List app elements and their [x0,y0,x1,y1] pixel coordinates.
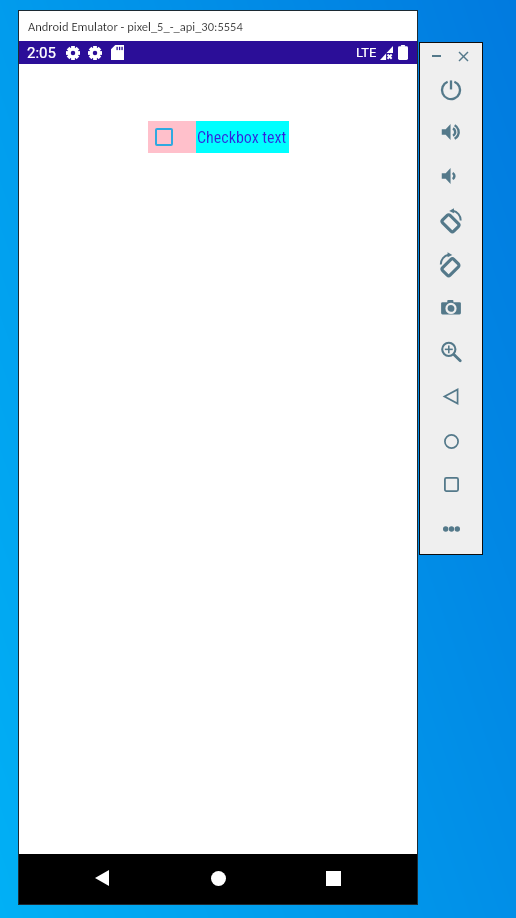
button[interactable]: Overview [436,469,466,499]
button[interactable]: Recents [313,858,353,898]
button[interactable]: Power [436,74,466,104]
staticText: Android Emulator - pixel_5_-_api_30:5554 [28,19,243,34]
button[interactable]: Volume down [436,161,466,191]
button[interactable]: Close [454,47,472,65]
button[interactable]: Screenshot [436,293,466,323]
button[interactable]: Rotate right [436,250,466,280]
button[interactable]: Home [436,426,466,456]
button[interactable] [148,121,196,153]
button[interactable]: Minimize [427,47,445,65]
button[interactable]: More [436,514,466,544]
button[interactable]: Rotate left [436,206,466,236]
staticText: LTE [356,45,377,60]
button[interactable]: Back [82,858,122,898]
staticText: Checkbox text [197,128,287,147]
button[interactable]: Zoom [436,337,466,367]
staticText: 2:05 [27,44,56,62]
button[interactable]: Home [198,858,238,898]
button[interactable]: Volume up [436,117,466,147]
button[interactable]: Back [436,381,466,411]
